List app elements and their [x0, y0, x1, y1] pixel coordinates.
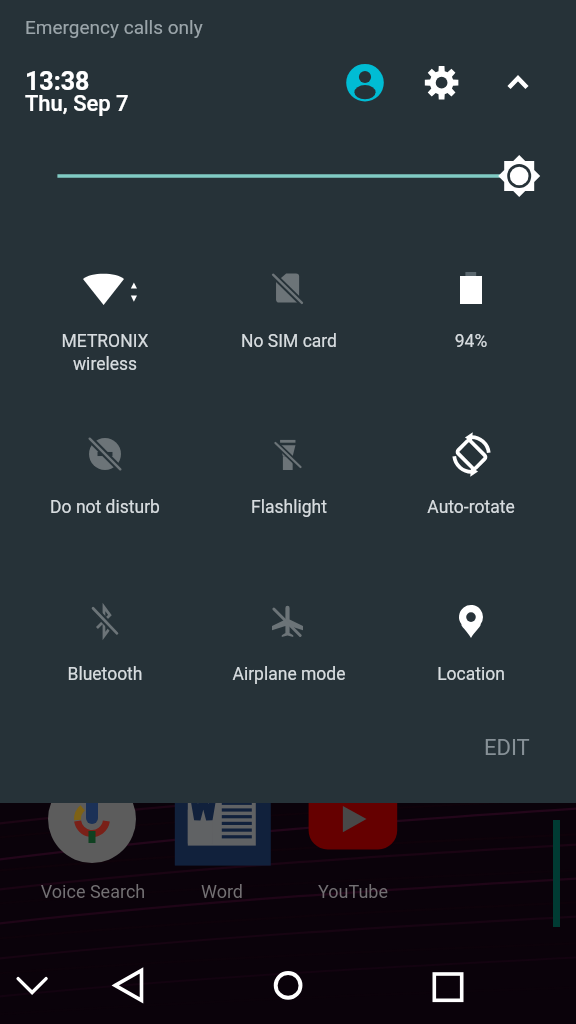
staticText: Do not disturb — [15, 497, 195, 518]
button[interactable]: Back — [102, 961, 154, 1013]
staticText: Airplane mode — [199, 664, 379, 685]
staticText: Word — [163, 881, 281, 902]
button[interactable]: 94% — [381, 240, 561, 370]
staticText: YouTube — [294, 881, 412, 902]
staticText: EDIT — [484, 735, 530, 761]
button[interactable]: Settings — [418, 59, 466, 107]
button[interactable]: User profile — [341, 59, 389, 107]
staticText: 13:38 — [25, 67, 90, 96]
staticText: Auto-rotate — [381, 497, 561, 518]
button[interactable]: Recent apps — [422, 961, 474, 1013]
staticText: Flashlight — [199, 497, 379, 518]
button[interactable]: Flashlight — [199, 406, 379, 536]
button[interactable]: METRONIX wireless — [15, 240, 195, 370]
staticText: Voice Search — [34, 881, 152, 902]
staticText: Bluetooth — [15, 664, 195, 685]
staticText: Location — [381, 664, 561, 685]
button[interactable]: Airplane mode — [199, 573, 379, 703]
button[interactable]: Bluetooth — [15, 573, 195, 703]
staticText: Thu, Sep 7 — [25, 91, 129, 117]
staticText: METRONIX wireless — [15, 331, 195, 374]
button[interactable]: Voice Search — [34, 769, 152, 901]
button[interactable]: No SIM card — [199, 240, 379, 370]
staticText: 94% — [381, 331, 561, 352]
staticText: No SIM card — [199, 331, 379, 352]
button[interactable]: Location — [381, 573, 561, 703]
button[interactable]: Word — [163, 769, 281, 901]
button[interactable]: Brightness — [30, 150, 546, 202]
button[interactable]: Home — [262, 961, 314, 1013]
button[interactable]: Auto-rotate — [381, 406, 561, 536]
staticText: Emergency calls only — [25, 16, 203, 38]
button[interactable]: Collapse quick settings — [494, 58, 542, 106]
button[interactable]: Hide — [6, 961, 58, 1013]
button[interactable]: EDIT — [462, 725, 551, 771]
button[interactable]: Do not disturb — [15, 406, 195, 536]
button[interactable]: YouTube — [294, 769, 412, 901]
